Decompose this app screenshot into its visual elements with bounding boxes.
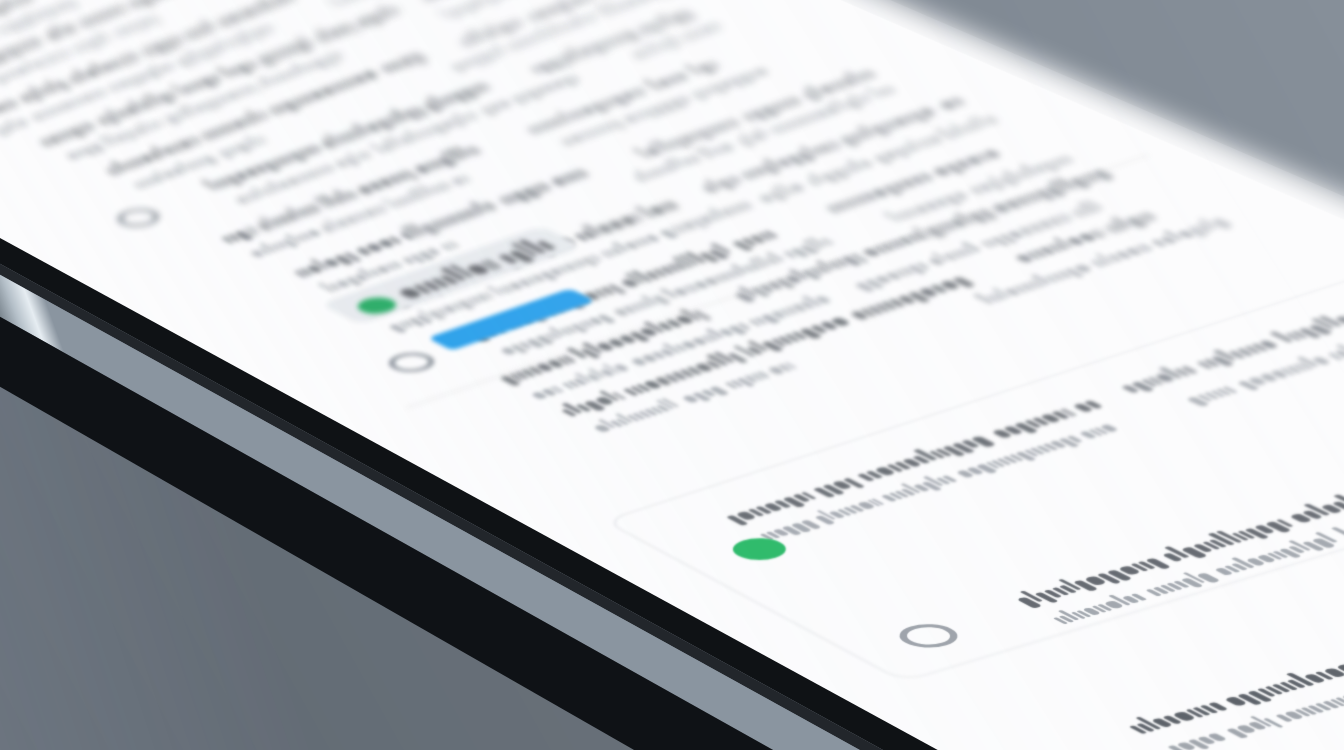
other: Phone showing a settings list [0, 0, 1344, 750]
button[interactable]: Phone showing a settings list [0, 0, 1344, 750]
